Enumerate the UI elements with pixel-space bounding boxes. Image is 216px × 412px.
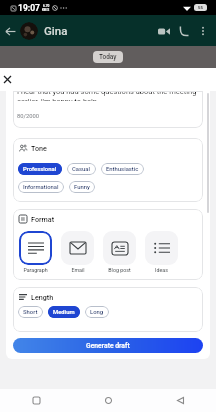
button[interactable]: Professional (18, 163, 62, 175)
staticText: Short (23, 309, 38, 316)
button[interactable]: Casual (67, 163, 96, 175)
button[interactable]: Profile photo (20, 22, 38, 40)
staticText: Length (31, 293, 54, 301)
staticText: Format (31, 215, 55, 223)
staticText: 19:07 (18, 3, 40, 13)
button[interactable]: Video call (154, 21, 174, 41)
button[interactable]: Generate draft (13, 338, 203, 353)
button[interactable]: Paragraph (19, 231, 52, 273)
staticText: Ideas (155, 267, 168, 273)
staticText: Gina (44, 24, 154, 37)
button[interactable]: Short (18, 306, 43, 318)
button[interactable]: Medium (48, 306, 80, 318)
button[interactable]: Close (1, 73, 14, 86)
staticText: Blog post (108, 267, 131, 273)
staticText: Enthusiastic (106, 166, 139, 173)
button[interactable]: Email (61, 231, 94, 273)
button[interactable]: More options (194, 22, 212, 40)
staticText: 80/2000 (17, 113, 39, 120)
button[interactable]: Long (85, 306, 109, 318)
staticText: 55 (198, 5, 203, 10)
button[interactable]: Enthusiastic (101, 163, 144, 175)
button[interactable]: Informational (18, 181, 64, 193)
staticText: I hear that you had some questions about… (17, 91, 199, 101)
staticText: Today (99, 53, 117, 61)
staticText: Informational (23, 184, 59, 191)
button[interactable]: Home (72, 389, 144, 412)
button[interactable]: Back (2, 23, 18, 39)
staticText: Email (71, 267, 85, 273)
button[interactable]: Funny (69, 181, 95, 193)
staticText: Funny (74, 184, 90, 191)
staticText: Long (90, 309, 104, 316)
button[interactable]: Ideas (145, 231, 178, 273)
button[interactable]: Recents (0, 389, 72, 412)
staticText: Casual (72, 166, 91, 173)
staticText: Generate draft (86, 342, 130, 350)
staticText: 6.70 (43, 4, 50, 8)
button[interactable]: Voice call (174, 21, 194, 41)
staticText: Professional (23, 166, 57, 173)
staticText: Medium (53, 309, 75, 316)
staticText: Tone (31, 144, 47, 152)
button[interactable]: Blog post (103, 231, 136, 273)
button[interactable]: Back (144, 389, 216, 412)
staticText: KB/S (42, 8, 50, 12)
staticText: Paragraph (23, 267, 48, 273)
